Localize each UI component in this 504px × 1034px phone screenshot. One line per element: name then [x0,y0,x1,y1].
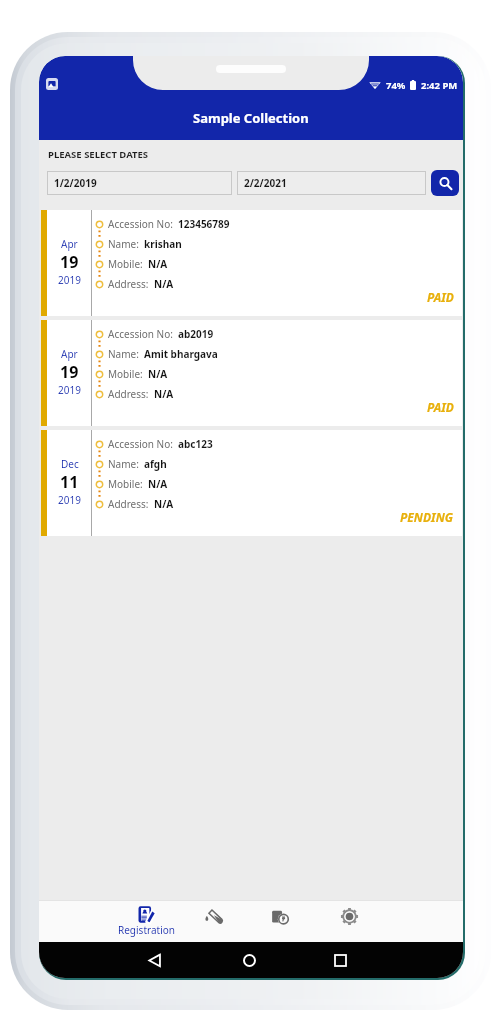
button[interactable]: Dec [41,430,462,536]
button[interactable]: Search [431,170,459,196]
staticText: 2019 [58,493,81,507]
staticText: Accession No: [108,327,173,341]
button[interactable]: Settings [314,901,385,942]
staticText: 74% [386,79,406,92]
staticText: Accession No: [108,437,173,451]
staticText: Name: [108,347,139,361]
staticText: PENDING [400,509,454,525]
staticText: abc123 [178,437,213,451]
staticText: Sample Collection [193,109,309,127]
staticText: 123456789 [178,217,230,231]
staticText: N/A [154,277,174,291]
staticText: 2019 [58,273,81,287]
staticText: Address: [108,497,149,511]
button[interactable]: Registration [113,901,180,942]
staticText: Apr [61,347,78,361]
button[interactable]: Apr [41,210,462,316]
staticText: N/A [148,367,168,381]
staticText: PAID [427,289,454,305]
staticText: 11 [60,471,79,493]
staticText: Registration [118,923,175,937]
staticText: 2/2/2021 [244,176,287,190]
staticText: Amit bhargava [144,347,218,361]
button[interactable]: 2/2/2021 [237,171,426,195]
staticText: N/A [148,477,168,491]
button[interactable]: Back [139,945,169,975]
staticText: 2019 [58,383,81,397]
staticText: 19 [60,251,79,273]
staticText: Mobile: [108,257,143,271]
staticText: 2:42 PM [421,79,458,92]
staticText: 1/2/2019 [54,176,97,190]
staticText: Apr [61,237,78,251]
staticText: N/A [148,257,168,271]
staticText: krishan [144,237,182,251]
staticText: Address: [108,277,149,291]
staticText: Name: [108,457,139,471]
staticText: ab2019 [178,327,214,341]
staticText: Dec [61,457,79,471]
staticText: Mobile: [108,367,143,381]
button[interactable]: Home [234,945,264,975]
staticText: 19 [60,361,79,383]
staticText: afgh [144,457,167,471]
staticText: N/A [154,497,174,511]
button[interactable]: Payment [247,901,314,942]
staticText: N/A [154,387,174,401]
staticText: Mobile: [108,477,143,491]
staticText: Accession No: [108,217,173,231]
staticText: Address: [108,387,149,401]
button[interactable]: Apr [41,320,462,426]
staticText: PAID [427,399,454,415]
button[interactable]: Sample collection [180,901,247,942]
button[interactable]: 1/2/2019 [47,171,232,195]
staticText: Name: [108,237,139,251]
staticText: PLEASE SELECT DATES [48,148,149,161]
button[interactable]: Recents [325,945,355,975]
